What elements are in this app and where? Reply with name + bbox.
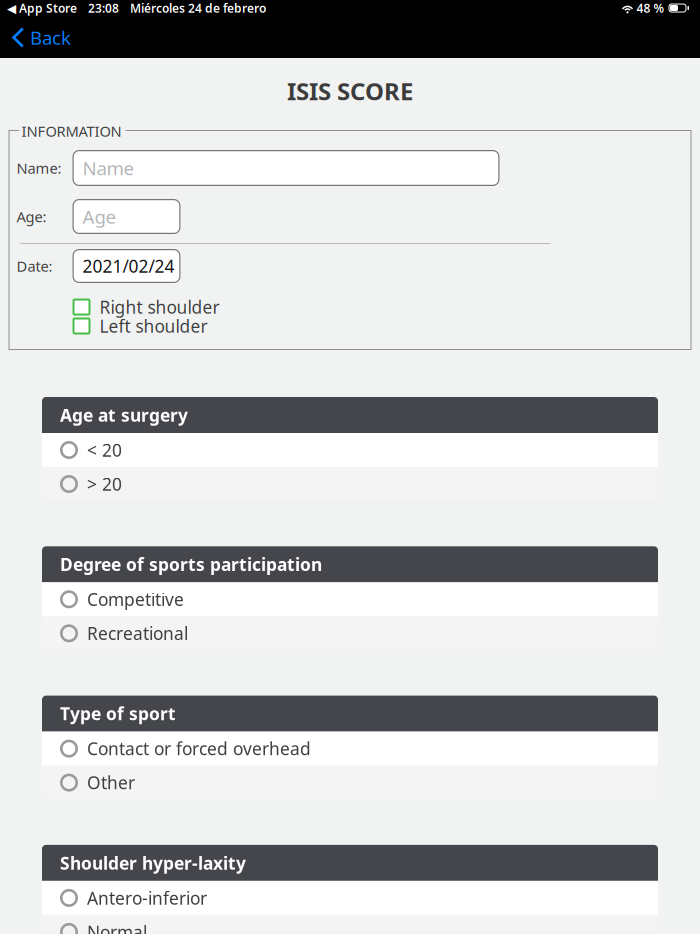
staticText: > 20 bbox=[87, 472, 122, 495]
staticText: INFORMATION bbox=[21, 121, 121, 141]
staticText: Date: bbox=[16, 256, 52, 276]
button[interactable]: Back bbox=[0, 16, 81, 58]
staticText: Back bbox=[30, 25, 71, 50]
staticText: Age bbox=[82, 204, 116, 229]
staticText: Recreational bbox=[87, 622, 188, 645]
staticText: 2021/02/24 bbox=[82, 254, 174, 277]
button[interactable]: Contact or forced overhead bbox=[42, 732, 658, 766]
staticText: 48 % bbox=[636, 0, 664, 16]
staticText: Shoulder hyper-laxity bbox=[60, 851, 246, 874]
button[interactable]: Normal bbox=[42, 915, 658, 934]
staticText: Normal bbox=[87, 920, 147, 934]
button[interactable]: > 20 bbox=[42, 467, 658, 501]
button[interactable]: Left shoulder bbox=[72, 318, 207, 334]
staticText: < 20 bbox=[87, 438, 122, 461]
staticText: Miércoles 24 de febrero bbox=[130, 0, 266, 16]
staticText: Other bbox=[87, 771, 135, 794]
staticText: Degree of sports participation bbox=[60, 553, 322, 576]
staticText: Contact or forced overhead bbox=[87, 737, 311, 760]
button[interactable]: Age: bbox=[72, 199, 180, 234]
staticText: Left shoulder bbox=[99, 314, 207, 337]
staticText: ◀ App Store bbox=[7, 0, 77, 16]
button[interactable]: Name: bbox=[72, 150, 499, 186]
button[interactable]: Other bbox=[42, 766, 658, 800]
staticText: 23:08 bbox=[88, 0, 119, 16]
button[interactable]: Competitive bbox=[42, 582, 658, 616]
staticText: Name: bbox=[16, 158, 61, 178]
button[interactable]: < 20 bbox=[42, 433, 658, 467]
staticText: Type of sport bbox=[60, 702, 176, 725]
staticText: Competitive bbox=[87, 588, 184, 611]
button[interactable]: Date: bbox=[72, 249, 180, 283]
staticText: Age at surgery bbox=[60, 403, 188, 426]
button[interactable]: Antero-inferior bbox=[42, 881, 658, 915]
button[interactable]: Recreational bbox=[42, 616, 658, 650]
staticText: Right shoulder bbox=[99, 295, 219, 318]
button[interactable]: Right shoulder bbox=[72, 299, 219, 315]
staticText: ISIS SCORE bbox=[287, 75, 413, 107]
staticText: Age: bbox=[16, 207, 46, 226]
staticText: Name bbox=[82, 156, 134, 180]
staticText: Antero-inferior bbox=[87, 886, 207, 909]
